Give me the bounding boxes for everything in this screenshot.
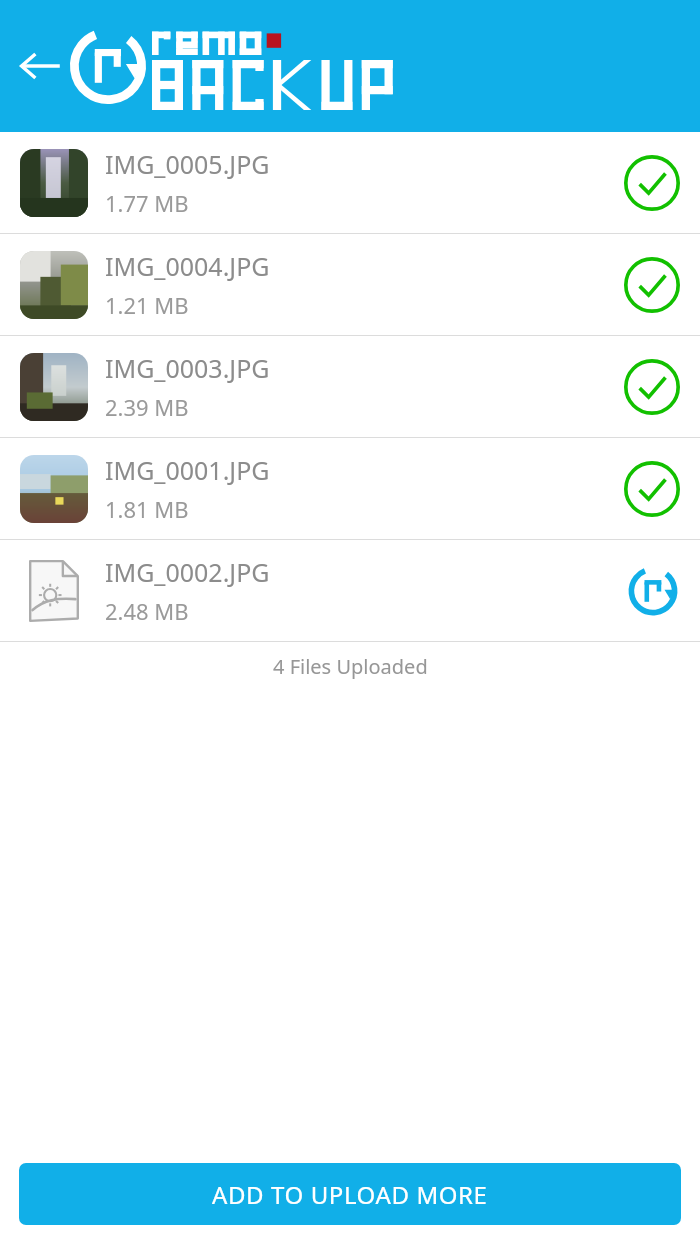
staticText: IMG_0001.JPG [105,453,270,487]
staticText: 4 Files Uploaded [273,653,428,680]
staticText: IMG_0005.JPG [105,147,270,181]
staticText: 2.39 MB [105,392,189,422]
staticText: 1.77 MB [105,188,189,218]
button[interactable]: IMG_0002.JPG [0,540,700,641]
staticText: IMG_0002.JPG [105,555,270,589]
staticText: IMG_0003.JPG [105,351,270,385]
staticText: 1.81 MB [105,494,189,524]
button[interactable]: IMG_0001.JPG [0,438,700,539]
button[interactable]: IMG_0004.JPG [0,234,700,335]
staticText: IMG_0004.JPG [105,249,270,283]
button[interactable]: IMG_0005.JPG [0,132,700,233]
staticText: ADD TO UPLOAD MORE [212,1178,488,1211]
staticText: 2.48 MB [105,596,189,626]
button[interactable]: ADD TO UPLOAD MORE [19,1163,681,1225]
button[interactable]: Back [6,32,74,100]
staticText: 1.21 MB [105,290,189,320]
button[interactable]: IMG_0003.JPG [0,336,700,437]
